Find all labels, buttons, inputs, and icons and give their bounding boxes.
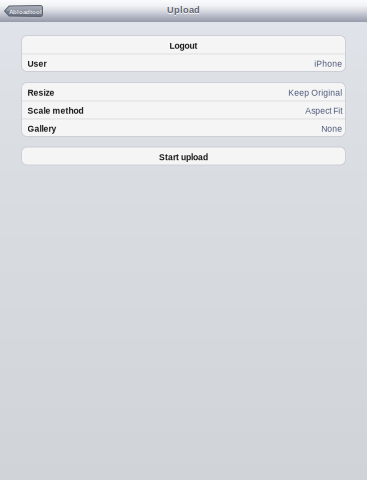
button[interactable]: Start upload [21,147,345,165]
staticText: iPhone [314,59,342,69]
staticText: Start upload [159,153,208,162]
staticText: Scale method [27,106,83,116]
staticText: Gallery [27,124,56,134]
button[interactable]: Logout [21,35,345,53]
button[interactable]: Abloadtool [4,5,42,16]
button[interactable]: Resize [21,82,345,100]
staticText: None [321,124,342,134]
staticText: User [27,59,46,69]
staticText: Upload [167,5,200,15]
staticText: Aspect Fit [305,106,342,116]
button[interactable]: User [21,53,345,71]
staticText: Logout [169,41,197,51]
button[interactable]: Gallery [21,118,345,136]
button[interactable]: Scale method [21,100,345,118]
staticText: Resize [27,88,54,98]
staticText: Abloadtool [9,8,42,15]
staticText: Upload [167,6,200,16]
staticText: Keep Original [288,88,342,98]
